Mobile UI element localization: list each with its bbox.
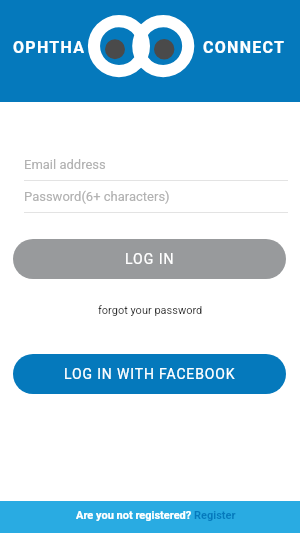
staticText: Email address [24,157,106,172]
button[interactable]: LOG IN WITH FACEBOOK [13,354,286,394]
staticText: Password(6+ characters) [24,189,170,204]
button[interactable]: LOG IN [13,239,286,279]
staticText: LOG IN WITH FACEBOOK [64,366,236,382]
button[interactable]: forgot your password [98,304,203,317]
staticText: Are you not registered? [76,509,192,522]
button[interactable]: Register [194,509,236,522]
staticText: OPHTHA [13,38,86,57]
staticText: CONNECT [203,38,286,57]
staticText: LOG IN [125,251,175,267]
